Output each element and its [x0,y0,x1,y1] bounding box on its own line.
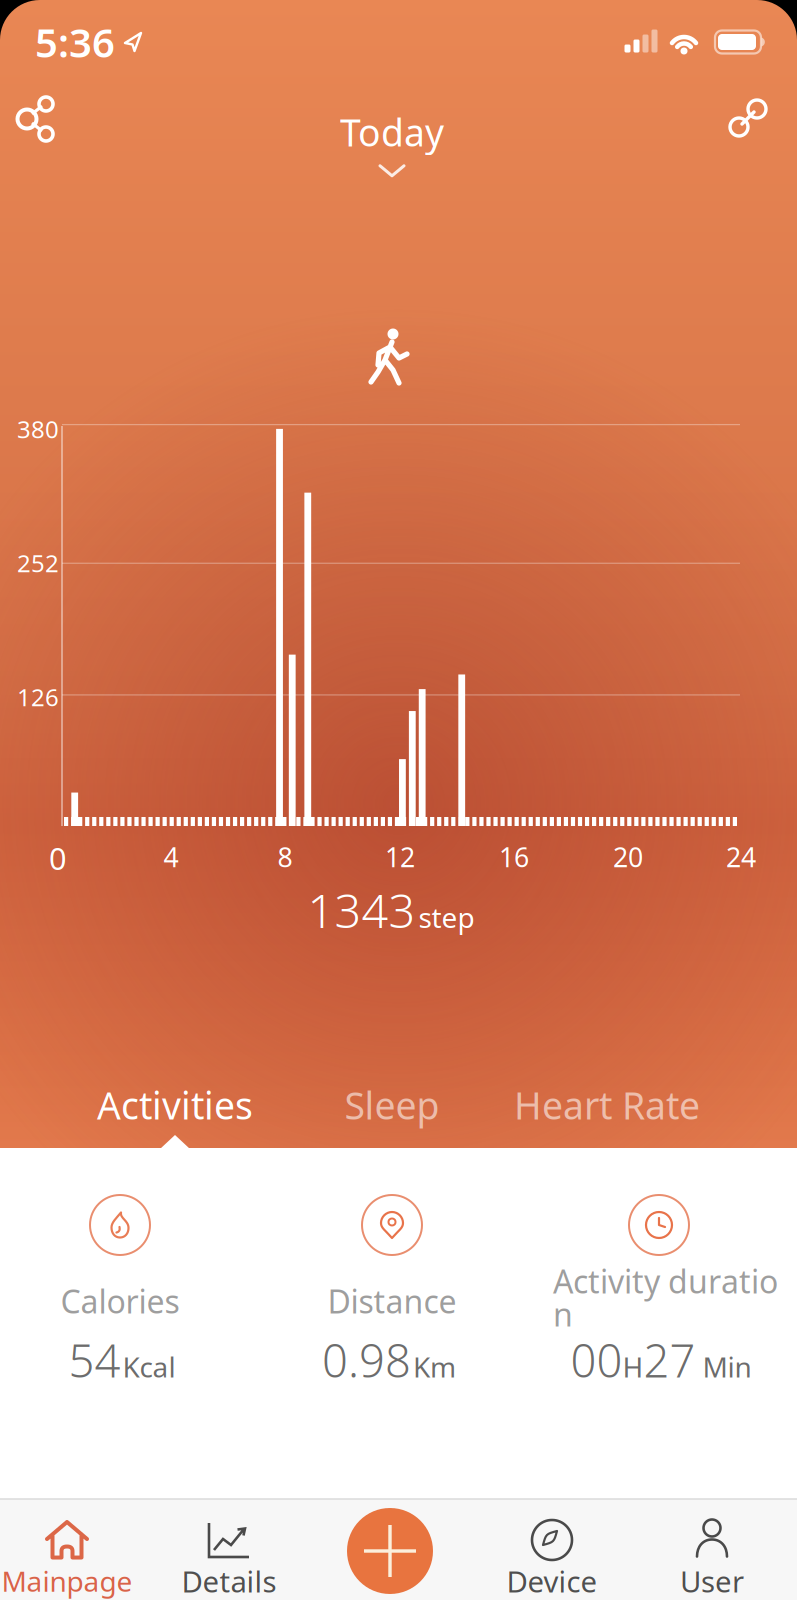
staticText: User [680,1561,744,1600]
button[interactable]: Sleep [344,1080,439,1130]
staticText: Device [506,1561,597,1600]
button[interactable] [347,1508,433,1594]
staticText: 5:36 [35,15,115,68]
staticText: 4 [163,839,178,875]
button[interactable] [728,98,768,138]
staticText: Km [413,1348,456,1385]
staticText: Kcal [122,1348,175,1385]
staticText: 1343 [307,879,415,941]
staticText: 27 [643,1330,695,1390]
staticText: n [553,1293,573,1335]
staticText: Activity duratio [553,1260,778,1302]
staticText: step [418,899,474,936]
staticText: Min [695,1348,751,1385]
button[interactable]: Device [473,1500,631,1600]
staticText: 00 [570,1330,622,1390]
staticText: 12 [385,839,415,875]
staticText: 126 [17,681,59,713]
staticText: H [622,1348,643,1385]
staticText: Heart Rate [514,1080,700,1130]
button[interactable]: Heart Rate [514,1080,700,1130]
staticText: Sleep [344,1080,439,1130]
staticText: 380 [17,413,59,445]
button[interactable]: Mainpage [0,1500,146,1600]
staticText: Distance [327,1280,456,1322]
staticText: 0.98 [322,1330,411,1390]
staticText: 54 [68,1330,120,1390]
staticText: 16 [499,839,529,875]
staticText: 20 [613,839,643,875]
button[interactable]: Details [150,1500,308,1600]
staticText: 8 [277,839,292,875]
staticText: Today [340,107,444,157]
staticText: Mainpage [1,1562,132,1600]
button[interactable]: User [633,1500,791,1600]
staticText: Details [181,1561,276,1600]
staticText: Activities [97,1080,253,1130]
button[interactable]: Today [340,107,444,177]
staticText: 0 [49,838,67,878]
staticText: 252 [17,547,59,579]
button[interactable]: Activities [97,1080,253,1130]
staticText: 24 [726,839,756,875]
staticText: Calories [60,1280,179,1322]
button[interactable] [16,97,54,141]
